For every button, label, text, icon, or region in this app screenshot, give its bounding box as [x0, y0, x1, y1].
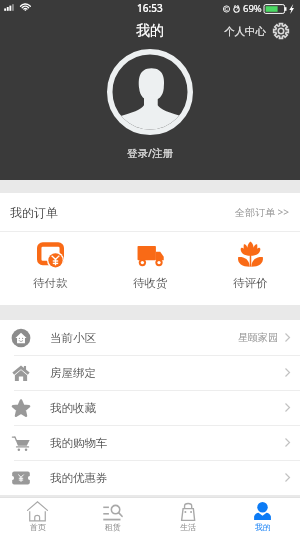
button[interactable]: 待评价 — [200, 232, 300, 305]
staticText: 租赁 — [105, 522, 121, 532]
staticText: 我的 — [136, 22, 164, 40]
staticText: 星颐家园 — [238, 331, 278, 344]
staticText: 我的收藏 — [50, 401, 96, 415]
button[interactable]: 当前小区 — [0, 320, 300, 355]
staticText: 我的订单 — [10, 205, 58, 220]
button[interactable]: 我的 — [225, 498, 300, 533]
staticText: 我的优惠券 — [50, 471, 108, 485]
staticText: 生活 — [180, 522, 196, 532]
button[interactable]: 我的订单 — [0, 193, 300, 231]
button[interactable]: 房屋绑定 — [0, 355, 300, 390]
button[interactable]: 我的购物车 — [0, 425, 300, 460]
staticText: 16:53 — [137, 1, 163, 15]
staticText: 待收货 — [133, 276, 168, 290]
staticText: 待付款 — [33, 276, 68, 290]
button[interactable]: 租赁 — [75, 498, 150, 533]
staticText: 全部订单 >> — [235, 205, 290, 219]
button[interactable]: 待收货 — [100, 232, 200, 305]
button[interactable]: 生活 — [150, 498, 225, 533]
staticText: 69% — [243, 2, 262, 15]
staticText: 我的购物车 — [50, 436, 108, 450]
staticText: 当前小区 — [50, 331, 96, 345]
staticText: 首页 — [30, 522, 46, 532]
staticText: 房屋绑定 — [50, 366, 96, 380]
staticText: 个人中心 — [224, 25, 266, 38]
button[interactable]: 我的收藏 — [0, 390, 300, 425]
button[interactable]: 首页 — [0, 498, 75, 533]
button[interactable]: 待付款 — [0, 232, 100, 305]
button[interactable]: 个人中心 — [224, 23, 289, 39]
other: Settings — [273, 23, 289, 39]
button[interactable]: 我的优惠券 — [0, 460, 300, 495]
staticText: 待评价 — [233, 276, 268, 290]
button[interactable]: 登录/注册 — [127, 146, 173, 160]
staticText: 我的 — [255, 522, 271, 532]
